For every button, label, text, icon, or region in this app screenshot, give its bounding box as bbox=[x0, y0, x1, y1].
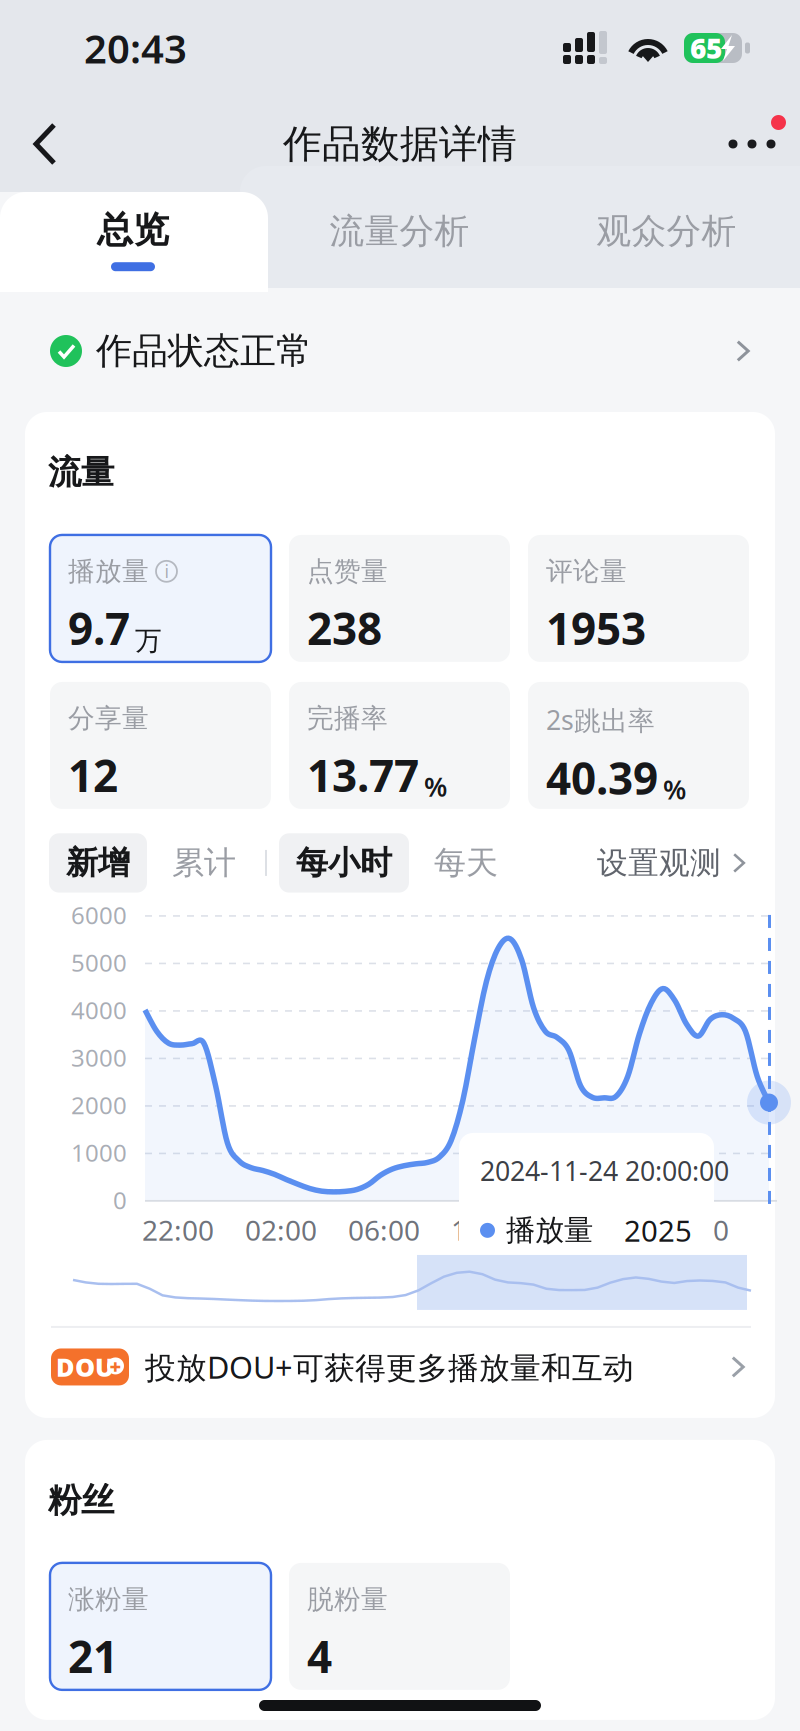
staticText: 4 bbox=[307, 1627, 332, 1685]
staticText: + bbox=[109, 1353, 121, 1379]
staticText: 流量分析 bbox=[329, 210, 469, 253]
button[interactable]: 每天 bbox=[417, 833, 515, 893]
button[interactable]: 流量分析 bbox=[266, 192, 533, 290]
staticText: % bbox=[663, 771, 686, 807]
staticText: 3000 bbox=[71, 1041, 127, 1073]
staticText: 总览 bbox=[97, 208, 169, 252]
staticText: 播放量 bbox=[68, 555, 149, 588]
staticText: 238 bbox=[307, 599, 382, 657]
button[interactable]: 新增 bbox=[49, 833, 147, 893]
staticText: DOU bbox=[56, 1350, 114, 1384]
staticText: 40.39 bbox=[546, 748, 658, 807]
button[interactable]: 作品状态正常 bbox=[0, 290, 800, 412]
button[interactable]: DOU bbox=[51, 1328, 751, 1406]
staticText: 12 bbox=[68, 746, 118, 804]
staticText: 观众分析 bbox=[596, 210, 736, 253]
staticText: 分享量 bbox=[68, 702, 149, 735]
button[interactable]: 点赞量 bbox=[289, 535, 510, 662]
staticText: 播放量 bbox=[506, 1212, 593, 1248]
staticText: 4000 bbox=[71, 994, 127, 1026]
staticText: % bbox=[424, 769, 447, 804]
staticText: 1000 bbox=[71, 1136, 127, 1168]
staticText: 作品状态正常 bbox=[96, 329, 312, 373]
staticText: 2025 bbox=[624, 1211, 692, 1250]
staticText: 14:00 bbox=[554, 1211, 626, 1249]
button[interactable]: 每小时 bbox=[279, 833, 409, 893]
button[interactable]: 分享量 bbox=[50, 682, 271, 809]
staticText: 1953 bbox=[546, 599, 646, 657]
staticText: 0 bbox=[113, 1184, 127, 1216]
staticText: 涨粉量 bbox=[68, 1583, 149, 1616]
staticText: 流量 bbox=[48, 452, 114, 493]
button[interactable]: 2s跳出率 bbox=[528, 682, 749, 809]
staticText: 06:00 bbox=[348, 1211, 420, 1249]
staticText: 每小时 bbox=[296, 843, 392, 883]
button[interactable]: 累计 bbox=[155, 833, 253, 893]
staticText: 6000 bbox=[71, 899, 127, 931]
staticText: i bbox=[164, 560, 168, 583]
staticText: 点赞量 bbox=[307, 555, 388, 588]
staticText: 粉丝 bbox=[48, 1480, 114, 1521]
staticText: 2024-11-24 20:00:00 bbox=[480, 1153, 729, 1188]
staticText: 脱粉量 bbox=[307, 1583, 388, 1616]
staticText: 65 bbox=[690, 29, 722, 67]
staticText: 13.77 bbox=[307, 746, 419, 804]
staticText: 设置观测 bbox=[597, 844, 721, 882]
staticText: 投放DOU+可获得更多播放量和互动 bbox=[145, 1347, 634, 1387]
button[interactable]: 总览 bbox=[0, 192, 266, 290]
button[interactable]: 返回 bbox=[0, 96, 90, 192]
staticText: 每天 bbox=[434, 843, 498, 883]
staticText: 10:00 bbox=[451, 1211, 523, 1249]
button[interactable]: 播放量 bbox=[50, 535, 271, 662]
staticText: 18:00 bbox=[657, 1211, 729, 1249]
staticText: 完播率 bbox=[307, 702, 388, 735]
staticText: 万 bbox=[135, 624, 162, 657]
button[interactable]: 脱粉量 bbox=[289, 1563, 510, 1690]
staticText: 02:00 bbox=[245, 1211, 317, 1249]
staticText: 新增 bbox=[66, 843, 130, 883]
button[interactable]: 涨粉量 bbox=[50, 1563, 271, 1690]
staticText: 评论量 bbox=[546, 555, 627, 588]
staticText: 作品数据详情 bbox=[283, 120, 517, 168]
button[interactable]: 更多 bbox=[704, 96, 800, 192]
staticText: 21 bbox=[68, 1627, 118, 1685]
staticText: 20:43 bbox=[84, 21, 187, 74]
button[interactable]: 评论量 bbox=[528, 535, 749, 662]
staticText: 2s跳出率 bbox=[546, 702, 655, 737]
staticText: 5000 bbox=[71, 946, 127, 978]
button[interactable]: 设置观测 bbox=[601, 841, 751, 885]
staticText: 2000 bbox=[71, 1089, 127, 1121]
staticText: 22:00 bbox=[142, 1211, 214, 1249]
button[interactable]: 完播率 bbox=[289, 682, 510, 809]
staticText: 9.7 bbox=[68, 599, 130, 657]
button[interactable]: 观众分析 bbox=[533, 192, 800, 290]
staticText: 累计 bbox=[172, 843, 236, 883]
